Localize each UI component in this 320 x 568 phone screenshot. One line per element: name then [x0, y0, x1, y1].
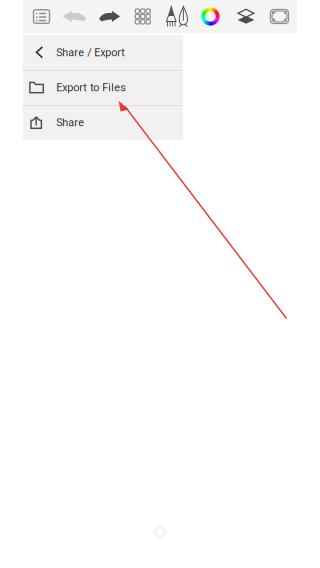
button[interactable]: Outline	[29, 4, 53, 28]
button[interactable]: Redo	[95, 4, 123, 28]
button[interactable]: Drawing tools	[165, 5, 189, 27]
button[interactable]: Color	[199, 5, 221, 27]
button[interactable]: Share / Export	[23, 35, 183, 70]
button[interactable]: Layers	[235, 5, 257, 27]
button[interactable]: Grid	[132, 5, 154, 27]
staticText: Share	[56, 116, 84, 129]
button[interactable]: Export to Files	[23, 70, 183, 105]
staticText: Share / Export	[56, 46, 125, 59]
button[interactable]: Share	[23, 105, 183, 140]
button[interactable]: Undo	[60, 4, 88, 28]
staticText: Export to Files	[56, 81, 126, 94]
button[interactable]: Transform	[268, 5, 290, 27]
